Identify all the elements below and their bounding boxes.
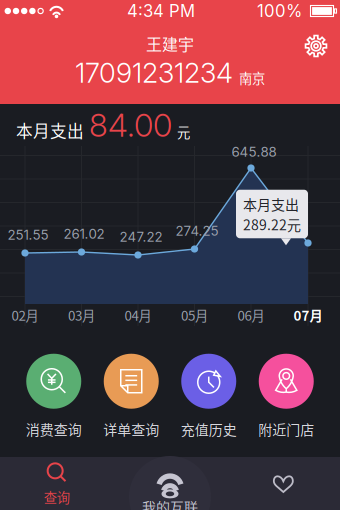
staticText: 645.88 [231,144,276,160]
staticText: 03月 [68,305,95,325]
staticText: 充值历史 [181,419,237,439]
staticText: 289.22元 [243,214,301,234]
staticText: 17091231234 [75,56,233,89]
staticText: 100% [257,1,302,21]
staticText: 本月支出 [16,118,84,142]
button[interactable]: 详单查询 [92,354,170,439]
staticText: 附近门店 [258,419,314,439]
staticText: 84.00 [89,106,172,144]
staticText: 详单查询 [103,419,159,439]
button[interactable]: Favorites [227,457,340,510]
staticText: 274.25 [175,223,218,239]
staticText: 07月 [293,305,322,325]
staticText: 247.22 [119,229,162,245]
staticText: 查询 [44,487,70,507]
staticText: 4:34 PM [127,1,195,21]
button[interactable]: 我的互联 [113,457,227,510]
button[interactable]: 查询 [0,457,113,510]
staticText: 06月 [237,305,264,325]
staticText: 02月 [11,305,38,325]
staticText: 本月支出 [243,194,299,214]
staticText: 05月 [181,305,208,325]
staticText: 251.55 [7,227,48,243]
staticText: 元 [177,122,190,141]
button[interactable]: 我的互联 [129,456,211,510]
staticText: 南京 [239,68,265,87]
button[interactable]: 充值历史 [170,354,247,439]
staticText: 王建宇 [146,32,194,55]
staticText: 我的互联 [142,496,198,510]
button[interactable]: 附近门店 [247,354,325,439]
button[interactable]: Settings [296,26,336,66]
staticText: 消费查询 [26,419,82,439]
staticText: 261.02 [63,226,104,242]
button[interactable]: 消费查询 [15,354,92,439]
staticText: 04月 [124,305,151,325]
